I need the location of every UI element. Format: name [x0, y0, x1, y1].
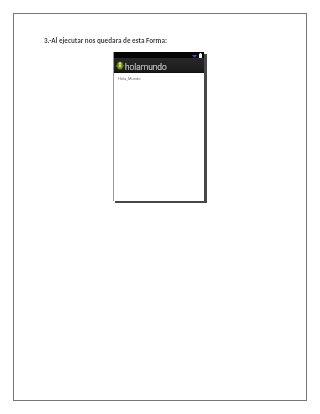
other: Wi-Fi signal	[192, 54, 197, 58]
staticText: holamundo	[125, 62, 167, 72]
button[interactable]: holamundo	[114, 58, 171, 73]
staticText: 3.-Al ejecutar nos quedara de esta Forma…	[44, 36, 167, 45]
other: Battery	[199, 53, 202, 58]
button[interactable]: Hola_Mundo	[118, 76, 141, 81]
